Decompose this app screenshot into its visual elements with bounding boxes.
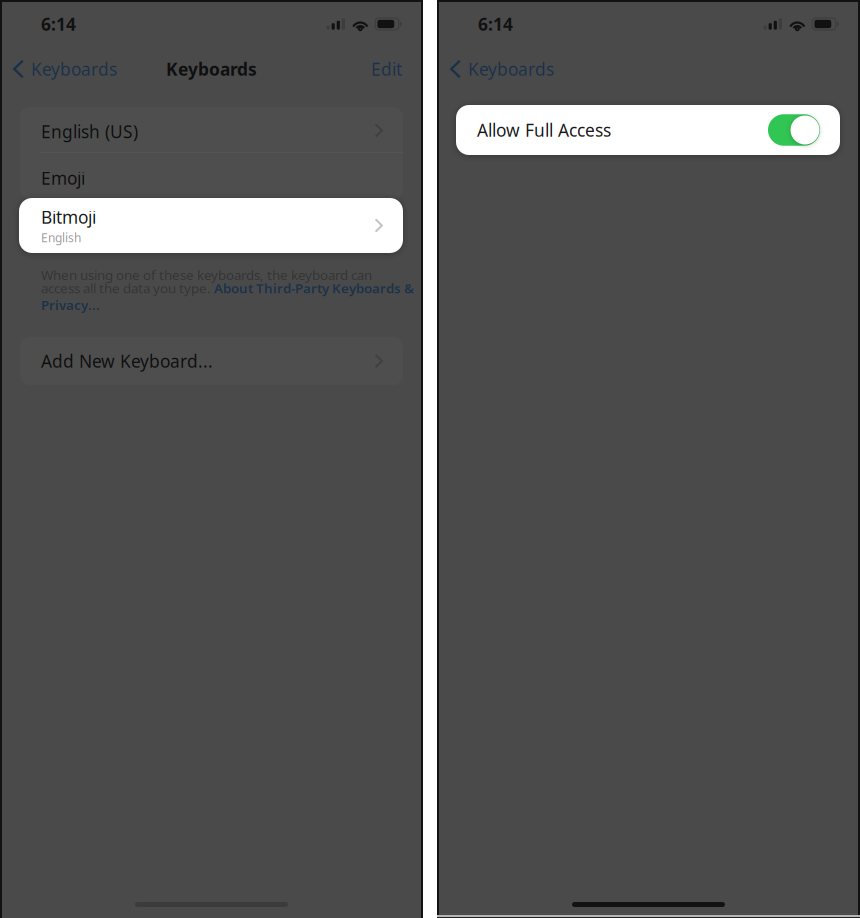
staticText: Edit xyxy=(371,57,402,80)
staticText: Bitmoji xyxy=(41,205,96,228)
staticText: 6:14 xyxy=(41,12,76,35)
staticText: Emoji xyxy=(41,166,85,189)
button[interactable]: Keyboards xyxy=(0,51,127,87)
button[interactable]: Allow Full Access xyxy=(456,105,840,155)
staticText: Keyboards xyxy=(468,57,554,80)
staticText: When using one of these keyboards, the k… xyxy=(41,266,372,284)
staticText: Keyboards xyxy=(31,57,117,80)
button[interactable]: Edit xyxy=(350,51,423,87)
button[interactable]: Bitmoji xyxy=(19,198,403,253)
button[interactable]: Emoji xyxy=(20,153,403,199)
staticText: Add New Keyboard... xyxy=(41,349,213,372)
staticText: Keyboards xyxy=(166,57,257,80)
button[interactable]: English (US) xyxy=(20,107,403,152)
button[interactable]: Add New Keyboard... xyxy=(20,337,403,385)
button[interactable]: Keyboards xyxy=(437,51,564,87)
staticText: access all the data you type. xyxy=(41,279,214,297)
staticText: Allow Full Access xyxy=(477,118,611,141)
staticText: English (US) xyxy=(41,120,138,143)
staticText: English xyxy=(41,229,81,245)
staticText: 6:14 xyxy=(478,12,513,35)
staticText: About Third-Party Keyboards & xyxy=(214,279,414,297)
staticText: Privacy... xyxy=(41,296,100,314)
